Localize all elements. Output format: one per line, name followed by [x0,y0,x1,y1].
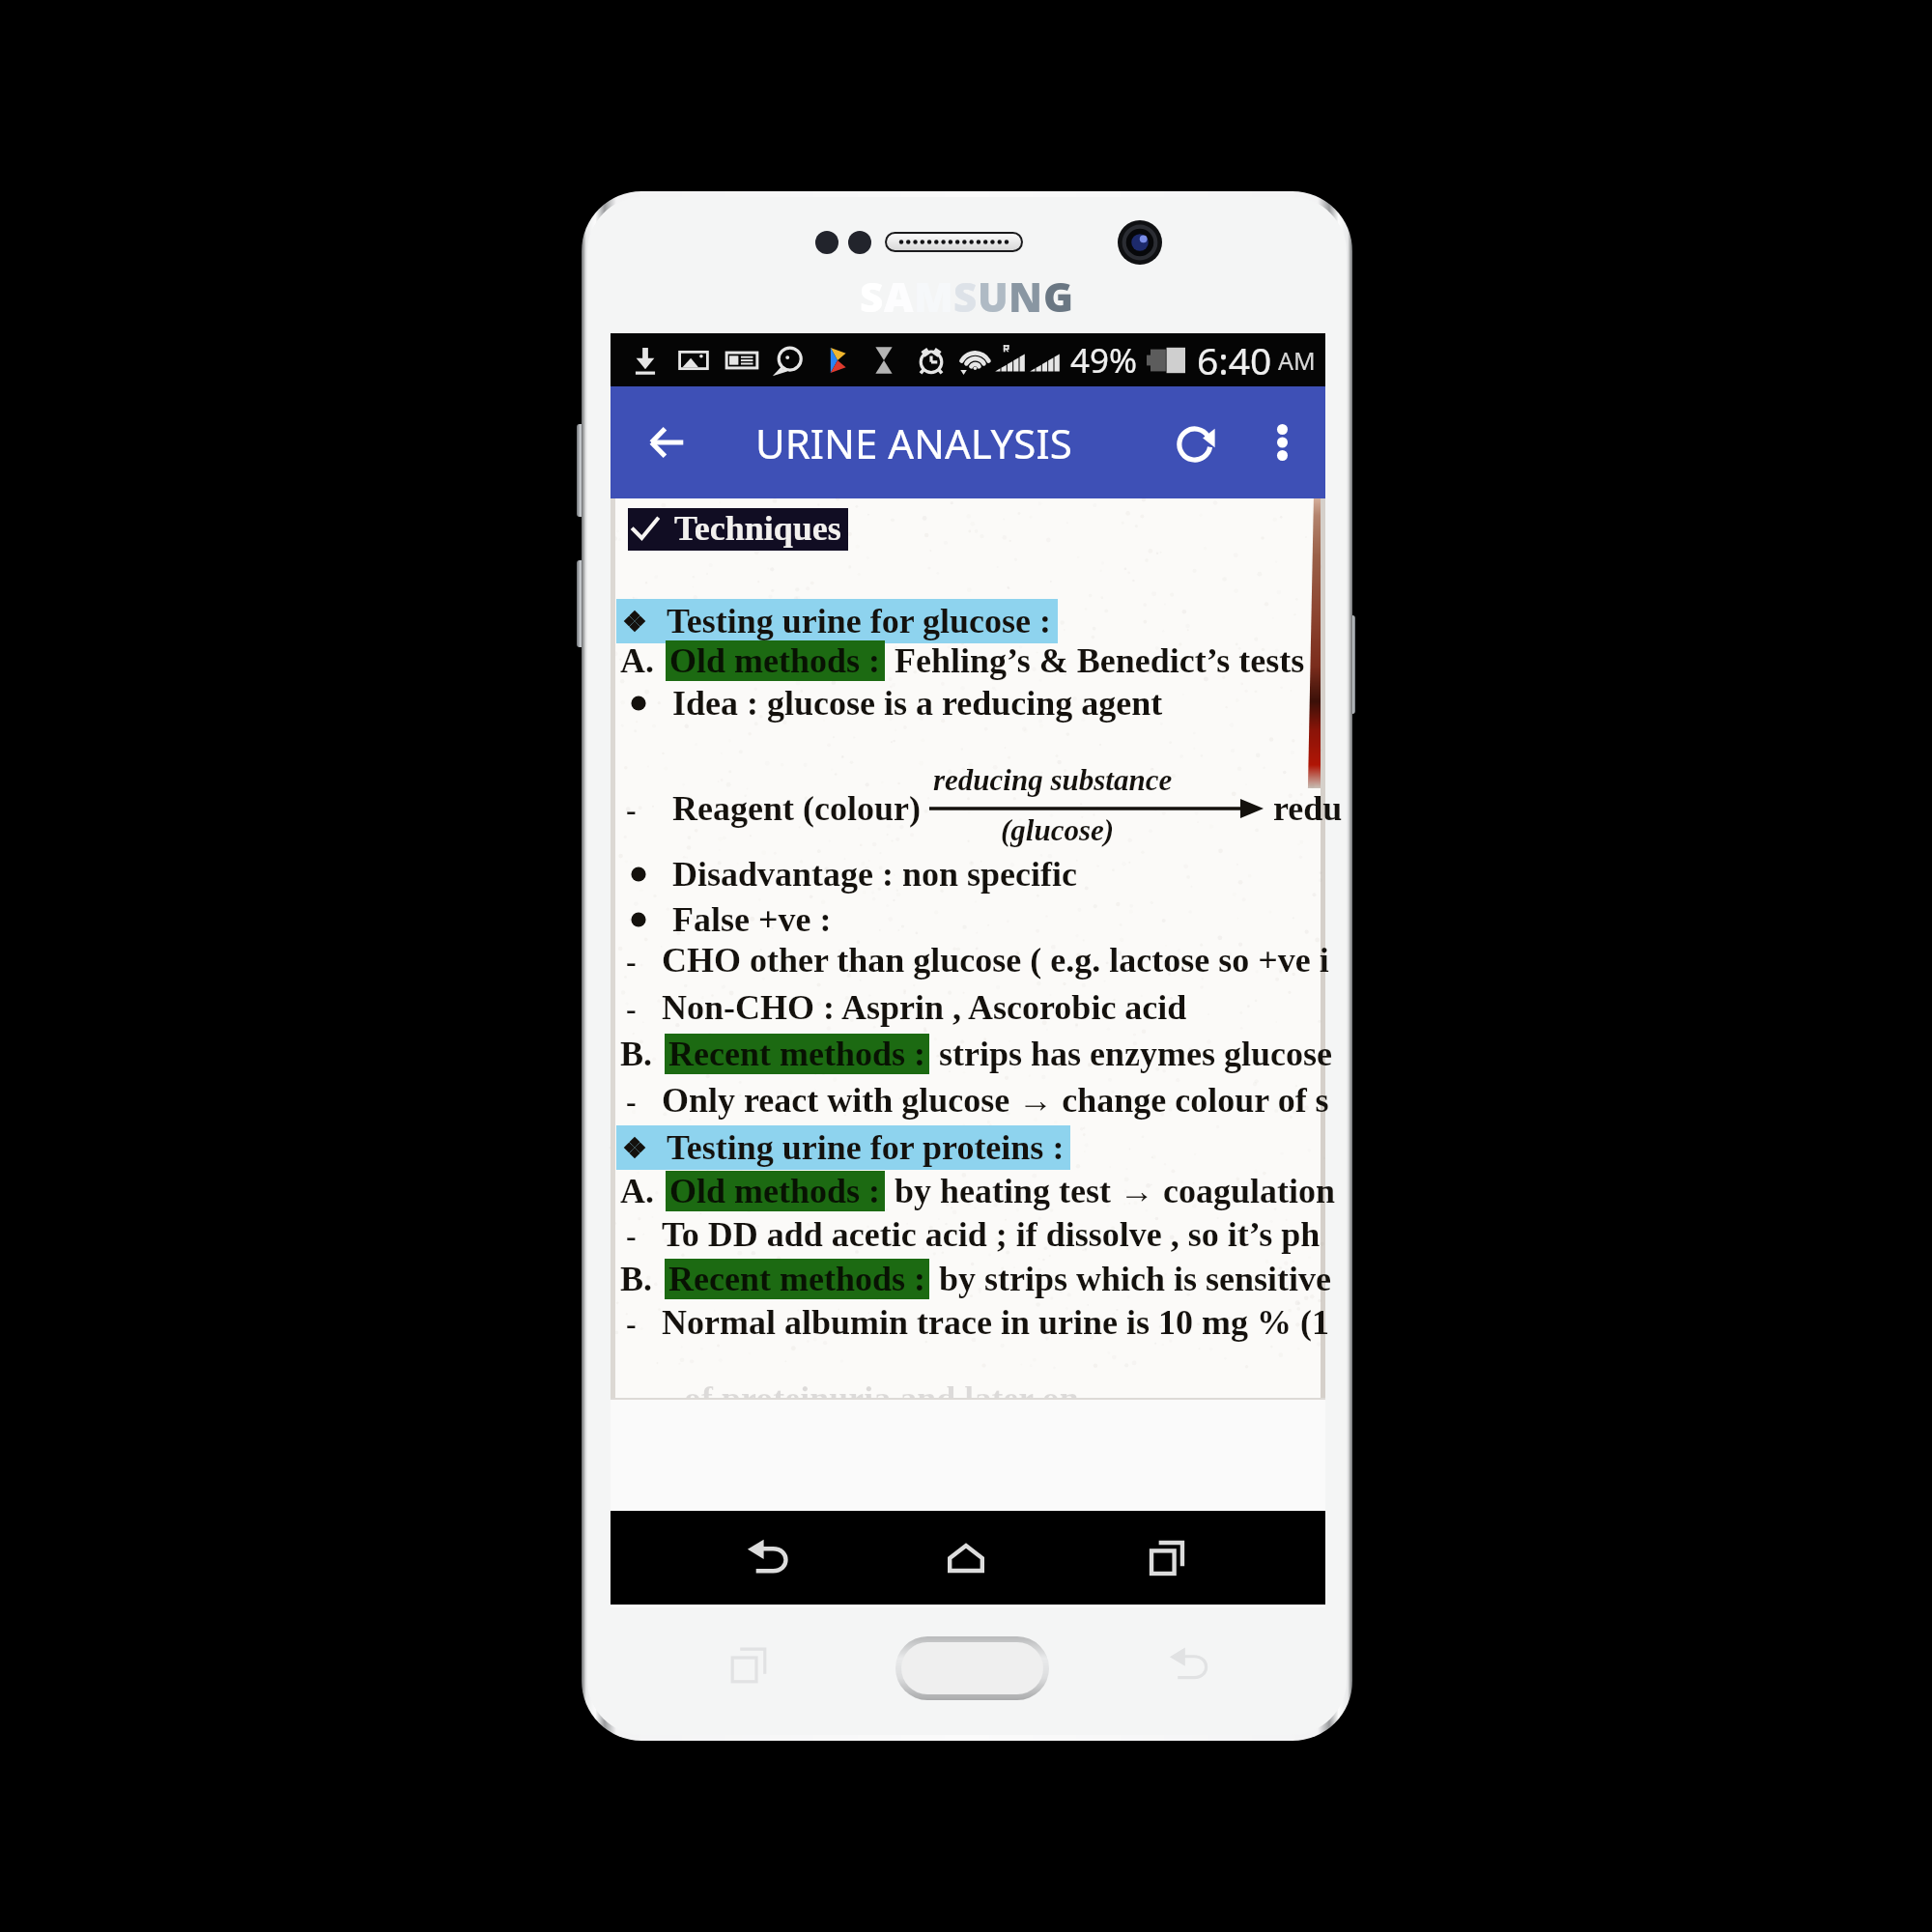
button[interactable]: Recents [1133,1524,1201,1592]
staticText: Testing urine for proteins : [667,1128,1065,1167]
staticText: To DD add acetic acid ; if dissolve , so… [662,1215,1321,1254]
staticText: by strips which is sensitive [939,1260,1332,1298]
staticText: by heating test → coagulation [895,1172,1335,1210]
staticText: Fehling’s & Benedict’s tests [895,641,1305,680]
staticText: Disadvantage : non specific [672,855,1078,894]
staticText: - [626,991,637,1025]
staticText: of proteinuria and later on [684,1379,1079,1398]
staticText: 6:40 [1197,334,1272,385]
staticText: N [1009,269,1043,324]
staticText: Recent methods : [668,1260,925,1298]
staticText: Old methods : [669,1172,881,1210]
staticText: redu [1273,789,1343,828]
staticText: (glucose) [1001,813,1115,846]
button[interactable]: Home [895,1636,1049,1700]
staticText: Reagent (colour) [672,789,921,828]
button[interactable]: Back [734,1524,802,1592]
staticText: S [860,269,884,324]
staticText: S [953,269,978,324]
staticText: Recent methods : [668,1035,925,1073]
staticText: A [884,269,914,324]
staticText: - [626,944,637,978]
button[interactable]: Refresh [1163,408,1233,477]
staticText: - [626,1084,637,1118]
staticText: reducing substance [933,763,1173,796]
staticText: strips has enzymes glucose [939,1035,1332,1073]
staticText: AM [1278,344,1316,377]
staticText: B. [620,1260,653,1298]
staticText: Normal albumin trace in urine is 10 mg %… [662,1303,1329,1342]
staticText: Non-CHO : Asprin , Ascorobic acid [662,988,1187,1027]
button[interactable]: Recents [724,1640,774,1690]
staticText: B. [620,1035,653,1073]
button[interactable]: More options [1247,408,1317,477]
button[interactable]: Back [1164,1640,1214,1690]
button[interactable]: Navigate up [632,408,701,477]
staticText: Old methods : [669,641,881,680]
staticText: Idea : glucose is a reducing agent [672,684,1163,723]
staticText: 49% [1070,337,1138,384]
staticText: G [1043,269,1074,324]
staticText: A. [620,641,654,680]
staticText: CHO other than glucose ( e.g. lactose so… [662,941,1329,980]
staticText: - [626,1218,637,1252]
staticText: - [626,1306,637,1340]
staticText: - [626,792,637,826]
staticText: Only react with glucose → change colour … [662,1081,1329,1120]
button[interactable]: Home [932,1524,1000,1592]
staticText: U [978,269,1009,324]
staticText: URINE ANALYSIS [755,415,1072,470]
staticText: Testing urine for glucose : [667,602,1052,640]
staticText: Techniques [674,509,841,548]
staticText: False +ve : [672,900,832,939]
staticText: A. [620,1172,654,1210]
